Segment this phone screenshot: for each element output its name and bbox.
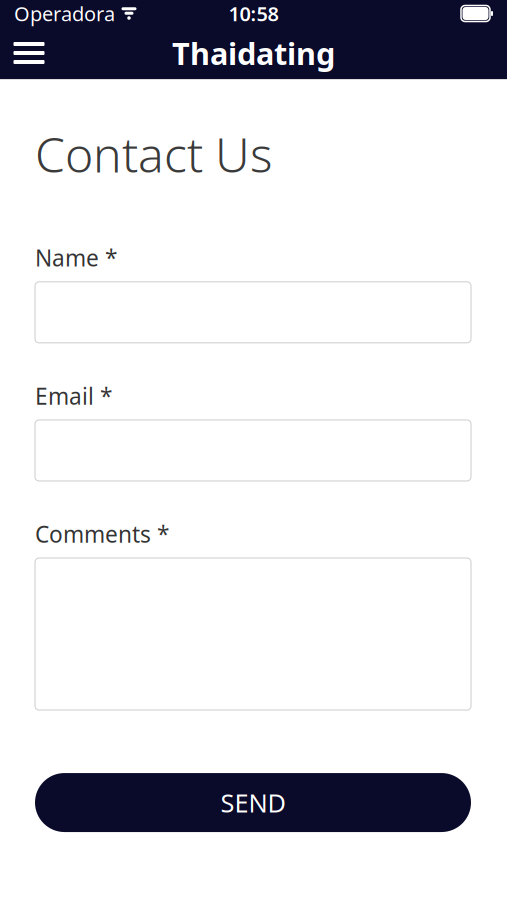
button[interactable]: Menu <box>0 27 58 79</box>
staticText: Name * <box>35 243 117 273</box>
button[interactable]: Comments * <box>35 558 471 710</box>
staticText: 10:58 <box>228 0 278 27</box>
staticText: Comments * <box>35 519 169 549</box>
staticText: Contact Us <box>35 122 273 186</box>
button[interactable]: SEND <box>35 773 471 832</box>
button[interactable]: Email * <box>35 420 471 481</box>
staticText: SEND <box>220 786 285 819</box>
staticText: Operadora <box>14 0 115 27</box>
staticText: Email * <box>35 381 112 411</box>
button[interactable]: Name * <box>35 282 471 343</box>
staticText: Thaidating <box>172 33 335 73</box>
